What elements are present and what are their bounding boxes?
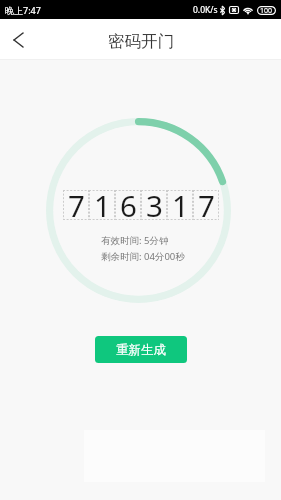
staticText: 晚上7:47 bbox=[5, 4, 41, 16]
button[interactable]: Back bbox=[0, 20, 40, 60]
staticText: 1 bbox=[172, 185, 189, 225]
staticText: 6 bbox=[120, 185, 137, 225]
staticText: 密码开门 bbox=[108, 31, 174, 52]
staticText: 剩余时间: 04分00秒 bbox=[101, 250, 185, 263]
button[interactable]: 重新生成 bbox=[95, 336, 187, 363]
staticText: 100 bbox=[260, 6, 273, 15]
staticText: 7 bbox=[68, 185, 85, 225]
staticText: 重新生成 bbox=[116, 342, 166, 358]
staticText: 0.0K/s bbox=[193, 4, 218, 16]
staticText: 有效时间: 5分钟 bbox=[101, 234, 169, 247]
staticText: 1 bbox=[94, 185, 111, 225]
staticText: 7 bbox=[198, 185, 215, 225]
staticText: 3 bbox=[146, 185, 163, 225]
